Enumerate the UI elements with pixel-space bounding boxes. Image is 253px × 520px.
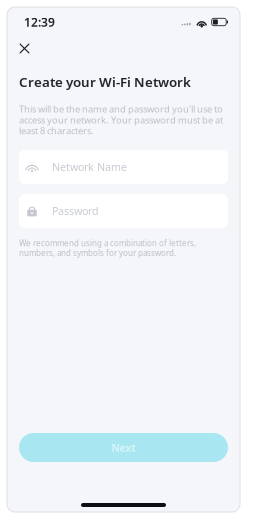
button[interactable]: Next — [19, 433, 228, 462]
staticText: We recommend using a combination of lett… — [19, 238, 196, 258]
staticText: Network Name — [52, 160, 127, 174]
staticText: Create your Wi-Fi Network — [19, 73, 191, 91]
button[interactable]: Close — [7, 37, 39, 60]
staticText: 12:39 — [24, 14, 55, 30]
staticText: This will be the name and password you'l… — [19, 103, 223, 137]
staticText: Password — [52, 204, 99, 218]
staticText: Next — [111, 440, 135, 455]
